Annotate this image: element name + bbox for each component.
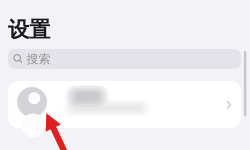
button[interactable] bbox=[8, 81, 241, 128]
staticText: 搜索 bbox=[27, 52, 51, 66]
staticText: 设置 bbox=[8, 17, 50, 43]
